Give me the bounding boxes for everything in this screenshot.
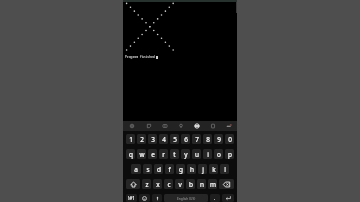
button[interactable]: Clipboard xyxy=(205,121,221,131)
button[interactable]: x xyxy=(153,179,162,189)
staticText: x xyxy=(156,180,160,189)
button[interactable]: Settings xyxy=(123,121,140,131)
button[interactable]: c xyxy=(164,179,173,189)
button[interactable]: p xyxy=(225,149,234,159)
button[interactable]: r xyxy=(159,149,168,159)
button[interactable]: i xyxy=(203,149,212,159)
staticText: w xyxy=(139,150,145,159)
button[interactable]: d xyxy=(154,164,163,174)
button[interactable]: Period xyxy=(210,194,220,202)
button[interactable]: 8 xyxy=(203,134,212,144)
button[interactable]: u xyxy=(192,149,201,159)
button[interactable]: q xyxy=(126,149,135,159)
button[interactable]: 3 xyxy=(148,134,157,144)
button[interactable]: Stickers xyxy=(140,121,157,131)
staticText: j xyxy=(202,165,204,174)
button[interactable]: g xyxy=(176,164,185,174)
staticText: 8 xyxy=(206,135,210,144)
button[interactable]: GIF xyxy=(157,121,173,131)
button[interactable]: m xyxy=(208,179,217,189)
button[interactable]: Voice input xyxy=(152,194,162,202)
button[interactable]: 7 xyxy=(192,134,201,144)
button[interactable]: a xyxy=(131,164,141,174)
button[interactable]: v xyxy=(175,179,184,189)
staticText: e xyxy=(151,150,155,159)
staticText: h xyxy=(190,165,194,174)
staticText: English (US) xyxy=(177,196,196,200)
staticText: 1 xyxy=(129,135,133,144)
staticText: t xyxy=(173,150,176,159)
staticText: 6 xyxy=(184,135,188,144)
button[interactable]: English (US) xyxy=(164,194,208,202)
button[interactable]: 4 xyxy=(159,134,168,144)
button[interactable]: h xyxy=(187,164,196,174)
staticText: 3 xyxy=(151,135,155,144)
staticText: r xyxy=(162,150,165,159)
button[interactable]: Translate xyxy=(189,121,205,131)
staticText: q xyxy=(129,150,133,159)
staticText: 9 xyxy=(217,135,221,144)
button[interactable]: Enter xyxy=(222,194,234,202)
staticText: v xyxy=(178,180,182,189)
staticText: !#1 xyxy=(128,195,135,201)
staticText: d xyxy=(157,165,161,174)
staticText: p xyxy=(228,150,232,159)
staticText: g xyxy=(179,165,183,174)
staticText: a xyxy=(134,165,138,174)
staticText: f xyxy=(168,165,171,174)
button[interactable]: y xyxy=(181,149,190,159)
button[interactable]: 5 xyxy=(170,134,179,144)
staticText: u xyxy=(195,150,199,159)
staticText: s xyxy=(146,165,150,174)
button[interactable]: Backspace xyxy=(219,179,234,189)
staticText: o xyxy=(217,150,221,159)
staticText: y xyxy=(184,150,188,159)
button[interactable]: f xyxy=(165,164,174,174)
staticText: Program finished xyxy=(125,55,155,59)
button[interactable]: Location xyxy=(173,121,189,131)
staticText: c xyxy=(167,180,171,189)
button[interactable]: l xyxy=(220,164,229,174)
button[interactable]: Emoji xyxy=(139,194,150,202)
button[interactable]: 2 xyxy=(137,134,146,144)
button[interactable]: 1 xyxy=(126,134,135,144)
staticText: 5 xyxy=(173,135,177,144)
button[interactable]: n xyxy=(197,179,206,189)
button[interactable]: 9 xyxy=(214,134,223,144)
staticText: b xyxy=(189,180,193,189)
button[interactable]: 6 xyxy=(181,134,190,144)
button[interactable]: w xyxy=(137,149,146,159)
button[interactable]: 0 xyxy=(225,134,234,144)
staticText: 0 xyxy=(228,135,232,144)
button[interactable]: More xyxy=(221,121,237,131)
staticText: z xyxy=(145,180,149,189)
staticText: i xyxy=(207,150,209,159)
staticText: 2 xyxy=(140,135,144,144)
staticText: k xyxy=(212,165,216,174)
button[interactable]: e xyxy=(148,149,157,159)
button[interactable]: t xyxy=(170,149,179,159)
staticText: n xyxy=(200,180,204,189)
button[interactable]: Symbols xyxy=(126,194,137,202)
staticText: 4 xyxy=(162,135,166,144)
button[interactable]: k xyxy=(209,164,218,174)
button[interactable]: o xyxy=(214,149,223,159)
staticText: 7 xyxy=(195,135,199,144)
staticText: l xyxy=(224,165,226,174)
button[interactable]: b xyxy=(186,179,195,189)
staticText: . xyxy=(214,195,216,202)
button[interactable]: z xyxy=(142,179,151,189)
button[interactable]: s xyxy=(143,164,152,174)
staticText: m xyxy=(210,180,216,189)
button[interactable]: j xyxy=(198,164,207,174)
button[interactable]: Shift xyxy=(126,179,140,189)
